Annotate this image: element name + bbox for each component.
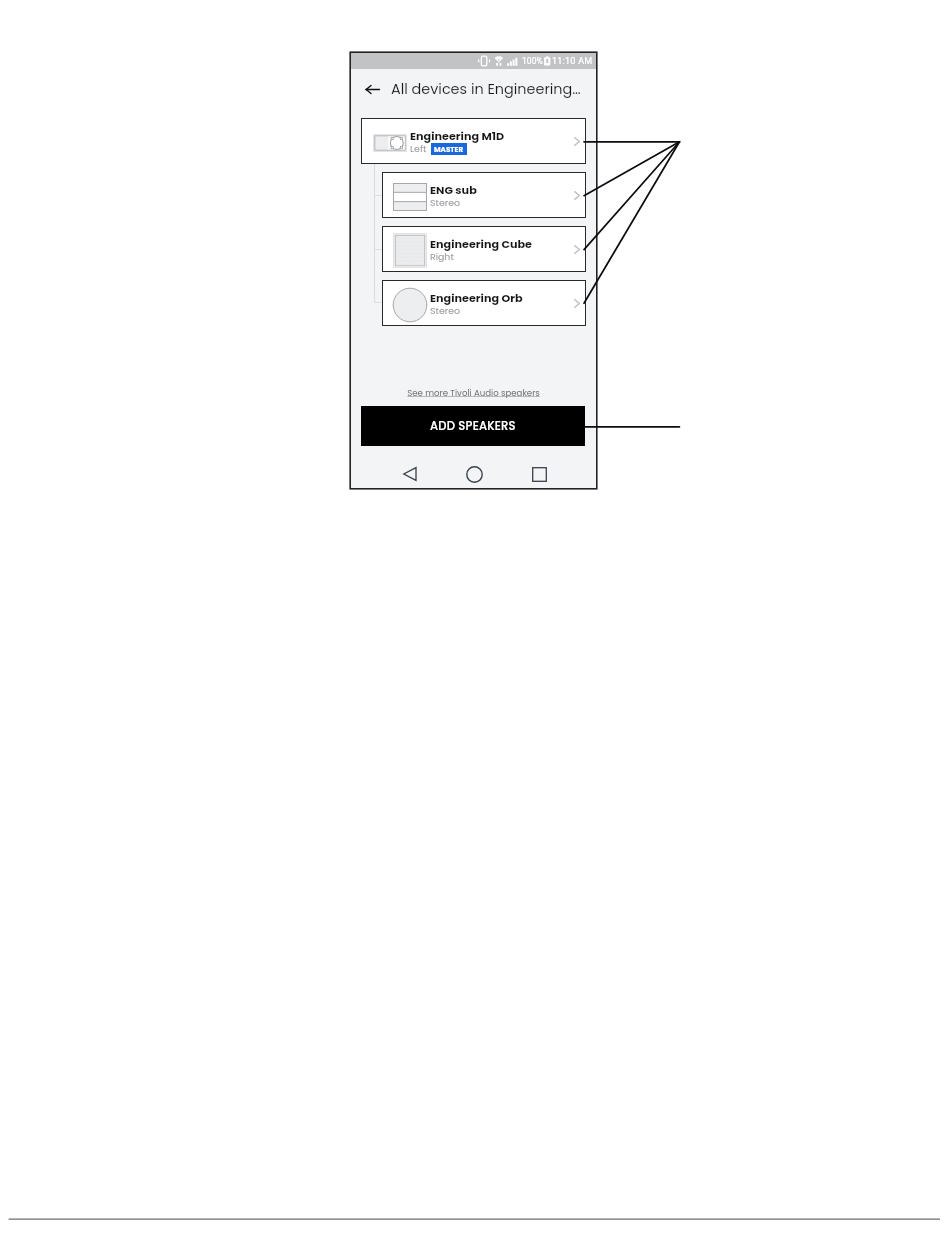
button[interactable]: Back [361, 78, 383, 100]
button[interactable]: ENG sub [382, 172, 586, 218]
button[interactable]: Engineering M1D [361, 118, 586, 164]
staticText: Stereo [430, 196, 461, 208]
staticText: See more Tivoli Audio speakers [407, 387, 540, 399]
staticText: Engineering Orb [430, 290, 523, 306]
staticText: Right [430, 250, 454, 262]
button[interactable]: See more Tivoli Audio speakers [351, 385, 596, 401]
staticText: Engineering M1D [410, 128, 505, 144]
staticText: All devices in Engineering… [391, 79, 581, 99]
button[interactable]: Engineering Orb [382, 280, 586, 326]
button[interactable]: Engineering Cube [382, 226, 586, 272]
staticText: Engineering Cube [430, 236, 532, 252]
staticText: Left [410, 142, 427, 154]
staticText: 100% [522, 56, 543, 66]
staticText: MASTER [434, 144, 464, 154]
button[interactable]: Back [395, 460, 423, 488]
staticText: 11:10 AM [552, 56, 593, 67]
button[interactable]: Home [460, 460, 488, 488]
staticText: ADD SPEAKERS [430, 418, 516, 434]
button[interactable]: ADD SPEAKERS [361, 406, 585, 446]
staticText: Stereo [430, 304, 461, 316]
staticText: ENG sub [430, 182, 477, 198]
button[interactable]: Recents [525, 460, 553, 488]
